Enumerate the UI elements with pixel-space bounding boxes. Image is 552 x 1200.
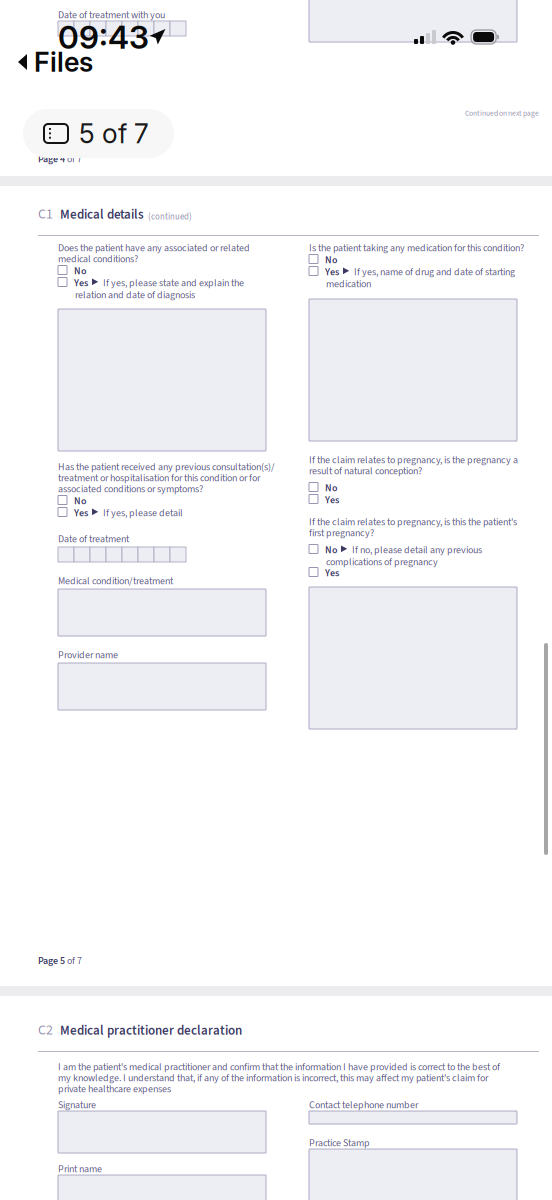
staticText: Practice Stamp: [309, 1136, 370, 1150]
staticText: relation and date of diagnosis: [75, 288, 195, 302]
staticText: Yes: [325, 493, 339, 507]
staticText: Provider name: [58, 648, 118, 662]
staticText: Page 4: [38, 152, 65, 166]
staticText: of 7: [65, 152, 82, 166]
staticText: Continued on next page: [465, 108, 539, 119]
staticText: No: [325, 481, 337, 495]
staticText: Date of treatment: [58, 532, 129, 546]
staticText: If yes, please detail: [103, 506, 183, 520]
staticText: If no, please detail any previous: [352, 543, 482, 557]
staticText: No: [74, 494, 86, 508]
staticText: No: [74, 264, 86, 278]
staticText: Date of treatment with you: [58, 8, 165, 22]
staticText: Does the patient have any associated or …: [58, 241, 250, 255]
staticText: Yes: [325, 566, 339, 580]
staticText: medical conditions?: [58, 252, 138, 266]
staticText: If the claim relates to pregnancy, is th…: [309, 453, 518, 467]
staticText: Yes: [325, 265, 339, 279]
staticText: C1: [38, 204, 53, 224]
staticText: Is the patient taking any medication for…: [309, 241, 524, 255]
staticText: of 7: [65, 954, 82, 968]
staticText: Has the patient received any previous co…: [58, 460, 275, 474]
staticText: complications of pregnancy: [326, 555, 438, 569]
staticText: I am the patient's medical practitioner …: [58, 1060, 500, 1074]
staticText: 5 of 7: [79, 117, 149, 150]
staticText: Files: [34, 46, 93, 78]
staticText: my knowledge. I understand that, if any …: [58, 1071, 488, 1085]
staticText: If the claim relates to pregnancy, is th…: [309, 515, 517, 529]
staticText: Yes: [74, 506, 88, 520]
staticText: associated conditions or symptoms?: [58, 482, 203, 496]
staticText: private healthcare expenses: [58, 1082, 171, 1096]
staticText: first pregnancy?: [309, 526, 374, 540]
staticText: Contact telephone number: [309, 1098, 418, 1112]
staticText: Medical details: [60, 205, 144, 224]
staticText: If yes, please state and explain the: [103, 276, 244, 290]
staticText: Medical practitioner declaration: [60, 1021, 242, 1040]
staticText: Medical condition/treatment: [58, 574, 173, 588]
staticText: 09:43: [58, 18, 149, 56]
button[interactable]: 5 of 7: [23, 109, 174, 158]
staticText: No: [325, 543, 337, 557]
staticText: No: [325, 253, 337, 267]
staticText: Page 5: [38, 954, 65, 968]
staticText: result of natural conception?: [309, 464, 422, 478]
staticText: If yes, name of drug and date of startin…: [354, 265, 515, 279]
staticText: treatment or hospitalisation for this co…: [58, 471, 260, 485]
staticText: Print name: [58, 1162, 102, 1176]
staticText: medication: [326, 277, 371, 291]
staticText: Signature: [58, 1098, 96, 1112]
staticText: C2: [38, 1020, 53, 1040]
staticText: Yes: [74, 276, 88, 290]
staticText: (continued): [148, 210, 192, 223]
button[interactable]: Files: [0, 46, 107, 78]
